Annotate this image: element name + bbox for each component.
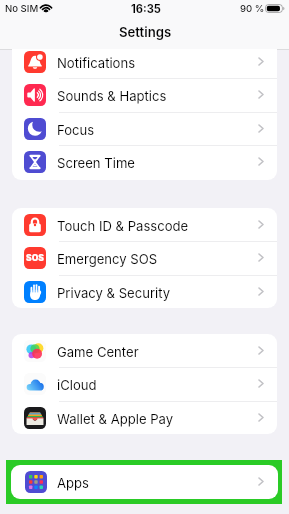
staticText: Touch ID & Passcode bbox=[57, 218, 189, 234]
staticText: SOS bbox=[26, 253, 44, 263]
staticText: Wallet & Apple Pay bbox=[57, 411, 174, 427]
button[interactable]: Game Center bbox=[12, 334, 277, 367]
button[interactable]: Screen Time bbox=[12, 145, 277, 178]
staticText: Settings bbox=[119, 24, 172, 40]
staticText: iCloud bbox=[57, 377, 97, 393]
staticText: 16:35 bbox=[131, 2, 161, 15]
button[interactable]: iCloud bbox=[12, 367, 277, 400]
staticText: No SIM bbox=[5, 3, 39, 15]
button[interactable]: Touch ID & Passcode bbox=[12, 208, 277, 241]
button[interactable]: Notifications bbox=[12, 49, 277, 78]
button[interactable]: Focus bbox=[12, 112, 277, 145]
button[interactable]: Privacy & Security bbox=[12, 275, 277, 308]
staticText: Focus bbox=[57, 122, 95, 138]
button[interactable]: Wallet & Apple Pay bbox=[12, 401, 277, 434]
staticText: Apps bbox=[57, 475, 89, 491]
staticText: Screen Time bbox=[57, 155, 136, 171]
staticText: Game Center bbox=[57, 344, 139, 360]
button[interactable]: Apps bbox=[11, 465, 278, 498]
staticText: Sounds & Haptics bbox=[57, 88, 167, 104]
staticText: 90 % bbox=[240, 3, 265, 15]
staticText: Privacy & Security bbox=[57, 285, 171, 301]
button[interactable]: SOS bbox=[12, 241, 277, 274]
staticText: Emergency SOS bbox=[57, 251, 158, 267]
staticText: Notifications bbox=[57, 55, 136, 71]
button[interactable]: Sounds & Haptics bbox=[12, 78, 277, 111]
